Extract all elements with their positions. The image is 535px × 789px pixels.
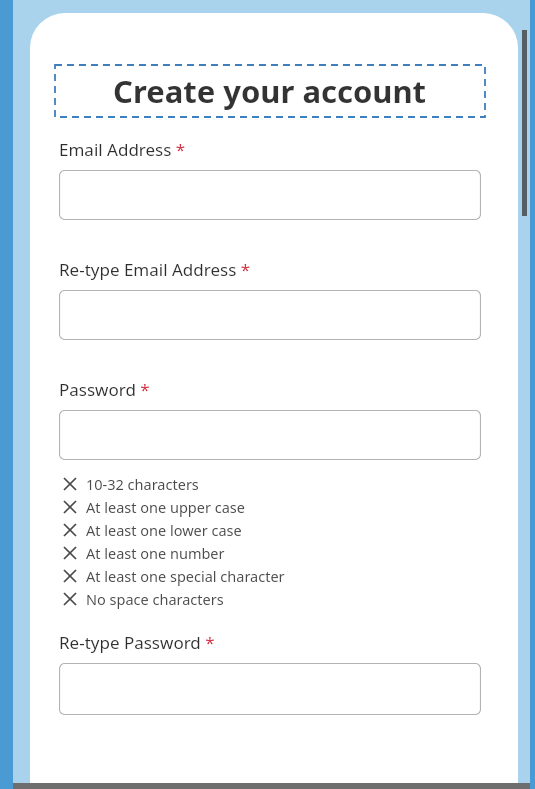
staticText: Re-type Password *	[59, 631, 215, 654]
staticText: Email Address *	[59, 138, 186, 161]
button[interactable]: Re-type Email Address input	[59, 290, 481, 340]
button[interactable]: Email Address input	[59, 170, 481, 220]
staticText: Re-type Email Address *	[59, 258, 251, 281]
staticText: Password *	[59, 378, 150, 401]
button[interactable]: Password input	[59, 410, 481, 460]
staticText: At least one upper case	[86, 497, 245, 517]
staticText: Create your account	[113, 70, 427, 112]
staticText: 10-32 characters	[86, 474, 199, 494]
staticText: At least one lower case	[86, 520, 242, 540]
staticText: At least one number	[86, 543, 225, 563]
button[interactable]: Re-type Password input	[59, 663, 481, 715]
button[interactable]: Create your account	[59, 65, 481, 117]
staticText: No space characters	[86, 589, 224, 609]
staticText: At least one special character	[86, 566, 285, 586]
